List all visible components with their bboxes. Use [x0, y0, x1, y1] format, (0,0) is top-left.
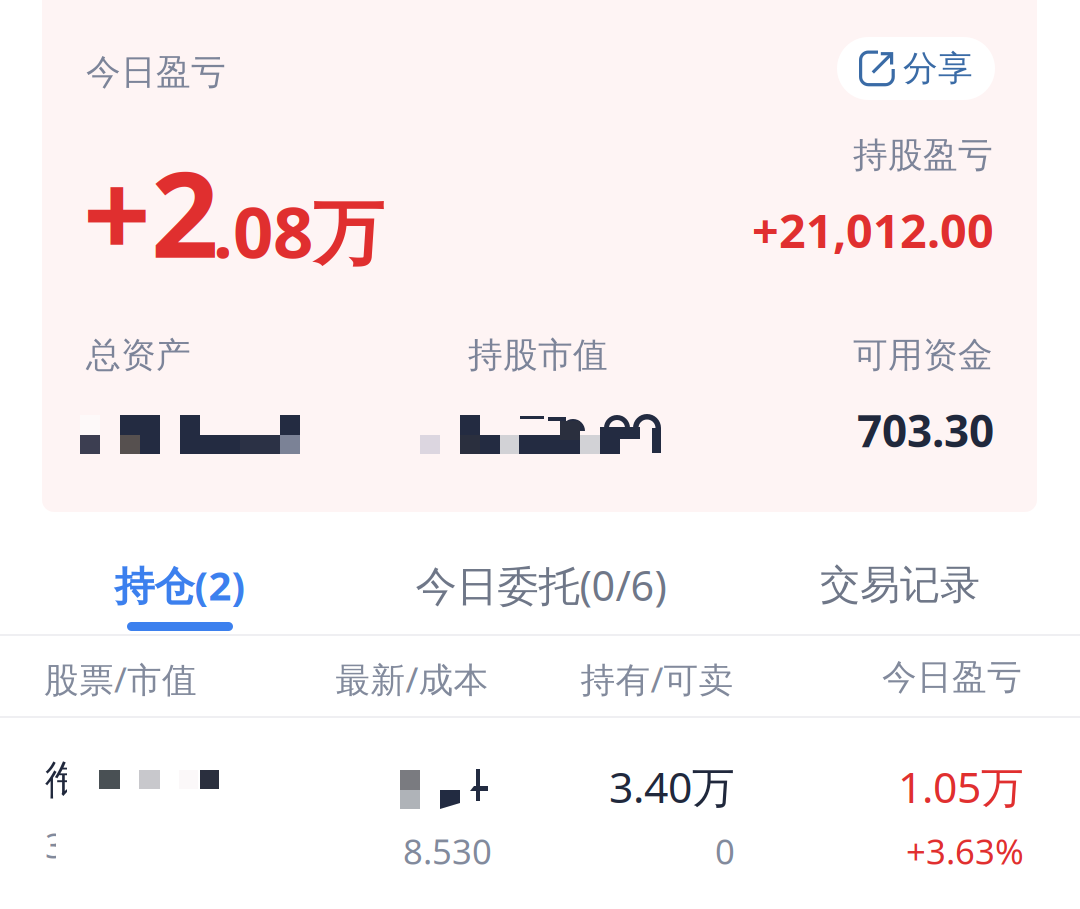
- staticText: 衔: [45, 755, 85, 804]
- staticText: +2: [83, 133, 219, 291]
- button[interactable]: [0, 718, 1080, 909]
- button[interactable]: 分享: [837, 37, 995, 100]
- staticText: +21,012.00: [752, 199, 994, 261]
- staticText: 今日盈亏: [882, 656, 1022, 699]
- staticText: 703.30: [857, 401, 994, 459]
- staticText: 交易记录: [820, 560, 980, 609]
- staticText: +3.63%: [906, 828, 1024, 874]
- staticText: 3: [45, 822, 65, 868]
- staticText: 0: [715, 828, 735, 874]
- staticText: 8.530: [403, 828, 492, 874]
- staticText: 可用资金: [853, 334, 993, 377]
- button[interactable]: 今日委托(0/6): [391, 550, 691, 620]
- staticText: 分享: [903, 47, 973, 90]
- staticText: 今日委托(0/6): [415, 558, 666, 612]
- staticText: .08万: [213, 184, 384, 278]
- staticText: 3.40万: [609, 758, 735, 815]
- staticText: 今日盈亏: [86, 51, 226, 94]
- staticText: 持仓(2): [114, 558, 245, 611]
- staticText: 持股盈亏: [853, 134, 993, 177]
- staticText: 持股市值: [468, 334, 608, 377]
- staticText: 股票/市值: [44, 656, 197, 702]
- staticText: 持有/可卖: [580, 656, 733, 702]
- button[interactable]: 持仓(2): [60, 550, 300, 620]
- staticText: 总资产: [86, 334, 191, 377]
- button[interactable]: 交易记录: [780, 550, 1020, 620]
- staticText: 最新/成本: [335, 656, 488, 702]
- staticText: 1.05万: [898, 758, 1024, 815]
